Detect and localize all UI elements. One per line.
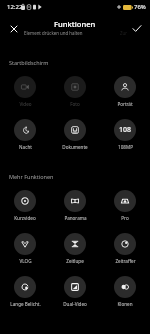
staticText: 76% [134,3,146,11]
staticText: Dual-Video [63,301,87,307]
button[interactable]: 108 [100,119,150,150]
staticText: Kurzvideo [14,215,36,221]
staticText: Porträt [117,101,133,107]
staticText: Zeitlupe [66,258,84,264]
button[interactable]: Video [0,76,50,107]
button[interactable]: Kurzvideo [0,190,50,221]
staticText: Funktionen [54,19,96,29]
button[interactable]: VLOG [0,233,50,264]
button[interactable]: Klonen [100,276,150,307]
button[interactable]: Porträt [100,76,150,107]
staticText: Startbildschirm [9,59,49,66]
button[interactable]: Zeitlupe [50,233,100,264]
staticText: Zur [120,30,128,36]
staticText: Lange Belicht. [10,301,41,307]
button[interactable]: Foto [50,76,100,107]
staticText: VLOG [19,258,32,264]
staticText: Zeitraffer [115,258,136,264]
staticText: Video [19,101,32,107]
button[interactable]: Zeitraffer [100,233,150,264]
button[interactable]: Nacht [0,119,50,150]
staticText: Panorama [64,215,87,221]
button[interactable]: Dokumente [50,119,100,150]
staticText: Klonen [117,301,133,307]
staticText: Foto [70,101,80,107]
staticText: Nacht [19,144,32,150]
staticText: Dokumente [62,144,88,150]
staticText: Pro [121,215,129,221]
staticText: 12:22 [7,3,23,11]
staticText: Mehr Funktionen [9,173,54,180]
staticText: 108 [119,125,132,135]
staticText: Element drücken und halten [24,30,83,36]
staticText: 108MP [118,144,133,150]
button[interactable]: Schließen [11,26,25,38]
button[interactable]: Dual-Video [50,276,100,307]
button[interactable]: Pro [100,190,150,221]
button[interactable]: Panorama [50,190,100,221]
button[interactable]: Lange Belicht. [0,276,50,307]
button[interactable]: Fertig [133,24,147,38]
